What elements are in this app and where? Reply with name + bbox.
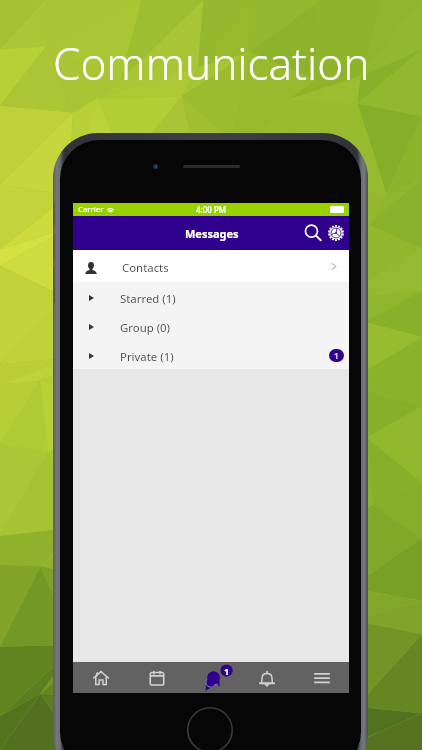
staticText: Carrier: [78, 204, 104, 215]
staticText: Private (1): [120, 349, 174, 365]
staticText: 1: [224, 665, 230, 677]
button[interactable]: Search: [301, 221, 325, 245]
button[interactable]: Group (0): [73, 311, 349, 340]
staticText: Communication: [53, 33, 370, 93]
button[interactable]: Contacts: [73, 250, 349, 282]
button[interactable]: Settings: [323, 221, 347, 245]
button[interactable]: Notifications: [239, 662, 294, 693]
staticText: Starred (1): [120, 291, 176, 307]
staticText: Contacts: [122, 260, 169, 276]
button[interactable]: Home: [73, 662, 129, 693]
staticText: Messages: [185, 226, 239, 241]
button[interactable]: Private (1): [73, 340, 349, 369]
button[interactable]: Calendar: [129, 662, 184, 693]
button[interactable]: Starred (1): [73, 282, 349, 311]
staticText: 1: [334, 350, 339, 361]
button[interactable]: Menu: [294, 662, 349, 693]
staticText: Group (0): [120, 320, 171, 336]
staticText: 4:00 PM: [196, 204, 227, 215]
button[interactable]: Messages: [184, 662, 239, 693]
